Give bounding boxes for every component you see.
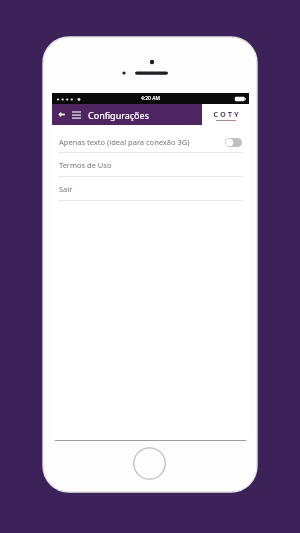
staticText: C O T Y <box>213 109 239 119</box>
staticText: Sair <box>59 184 73 194</box>
button[interactable]: Termos de Uso <box>52 153 249 176</box>
button[interactable]: Back <box>55 108 68 121</box>
staticText: Termos de Uso <box>59 160 112 170</box>
staticText: 4:20 AM <box>141 95 161 102</box>
button[interactable]: C O T Y <box>202 104 249 125</box>
button[interactable]: Sair <box>52 177 249 200</box>
button[interactable]: Menu <box>69 107 84 122</box>
button[interactable]: Apenas texto (ideal para conexão 3G) <box>52 132 249 152</box>
staticText: Apenas texto (ideal para conexão 3G) <box>59 137 225 147</box>
staticText: Configurações <box>88 109 149 121</box>
